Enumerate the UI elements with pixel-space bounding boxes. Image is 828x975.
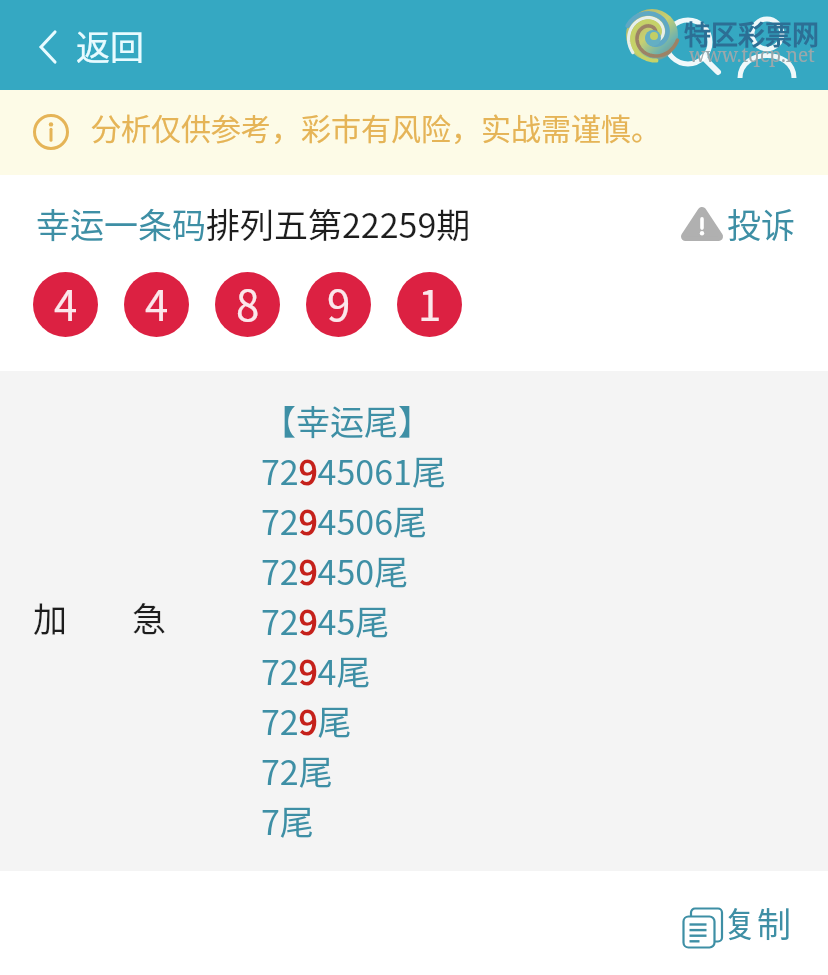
staticText: 投诉 (727, 199, 795, 248)
staticText: 9 (327, 272, 351, 333)
staticText: 4 (54, 272, 78, 333)
staticText: 急 (132, 593, 166, 642)
button[interactable]: Copy (672, 890, 797, 955)
staticText: 729尾 (261, 696, 352, 745)
other: Copy (683, 907, 723, 949)
staticText: 72尾 (261, 746, 333, 795)
staticText: 729450尾 (261, 546, 409, 595)
button[interactable]: 9 (306, 272, 371, 337)
staticText: 7294尾 (261, 646, 371, 695)
button[interactable]: 1 (397, 272, 462, 337)
staticText: 1 (418, 272, 442, 333)
staticText: 8 (236, 272, 260, 333)
button[interactable]: 返回 (29, 9, 154, 82)
staticText: 加 (33, 593, 67, 642)
staticText: 7294506尾 (261, 496, 428, 545)
staticText: 4 (145, 272, 169, 333)
staticText: 72945061尾 (261, 446, 446, 495)
button[interactable]: Report a problem (673, 192, 803, 255)
staticText: 【幸运尾】 (262, 396, 432, 445)
staticText: www.tqcp.net (689, 42, 815, 68)
button[interactable]: 4 (124, 272, 189, 337)
staticText: 72945尾 (261, 596, 390, 645)
staticText: 排列五第22259期 (206, 199, 471, 248)
staticText: 特区彩票网 (684, 14, 819, 53)
other: Report a problem (681, 207, 723, 241)
staticText: 返回 (76, 21, 144, 70)
button[interactable]: 8 (215, 272, 280, 337)
button[interactable]: 4 (33, 272, 98, 337)
button[interactable]: 幸运一条码 (36, 199, 206, 248)
staticText: 7尾 (261, 796, 314, 845)
staticText: 分析仅供参考，彩市有风险，实战需谨慎。 (91, 105, 661, 148)
staticText: 复制 (723, 898, 791, 947)
